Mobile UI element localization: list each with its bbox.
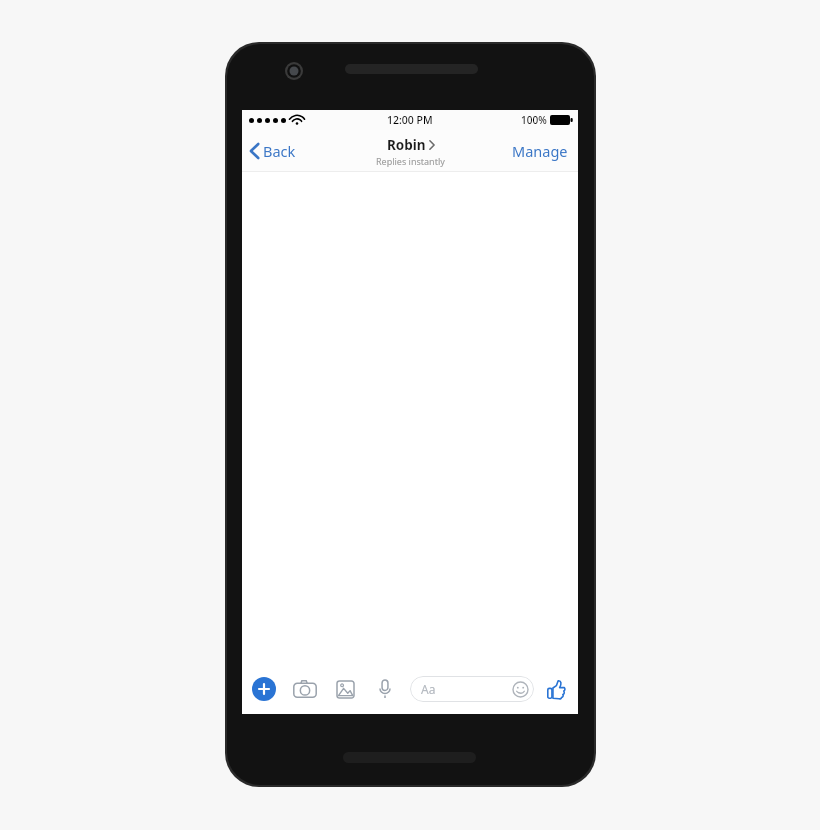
button[interactable]: Photos [332, 676, 358, 702]
button[interactable]: Manage [512, 130, 568, 172]
staticText: Back [263, 141, 296, 161]
staticText: Robin [387, 136, 426, 154]
button[interactable]: Send like [544, 677, 568, 701]
staticText: Replies instantly [376, 155, 445, 167]
staticText: 12:00 PM [387, 113, 433, 127]
button[interactable]: Open actions [252, 677, 276, 701]
staticText: Manage [512, 141, 568, 161]
button[interactable]: Camera [292, 676, 318, 702]
button[interactable]: Aa [410, 676, 534, 702]
staticText: Aa [421, 681, 436, 697]
button[interactable]: Back [250, 130, 296, 172]
button[interactable]: Voice message [372, 676, 398, 702]
button[interactable]: Robin [376, 130, 445, 172]
staticText: 100% [521, 113, 547, 127]
